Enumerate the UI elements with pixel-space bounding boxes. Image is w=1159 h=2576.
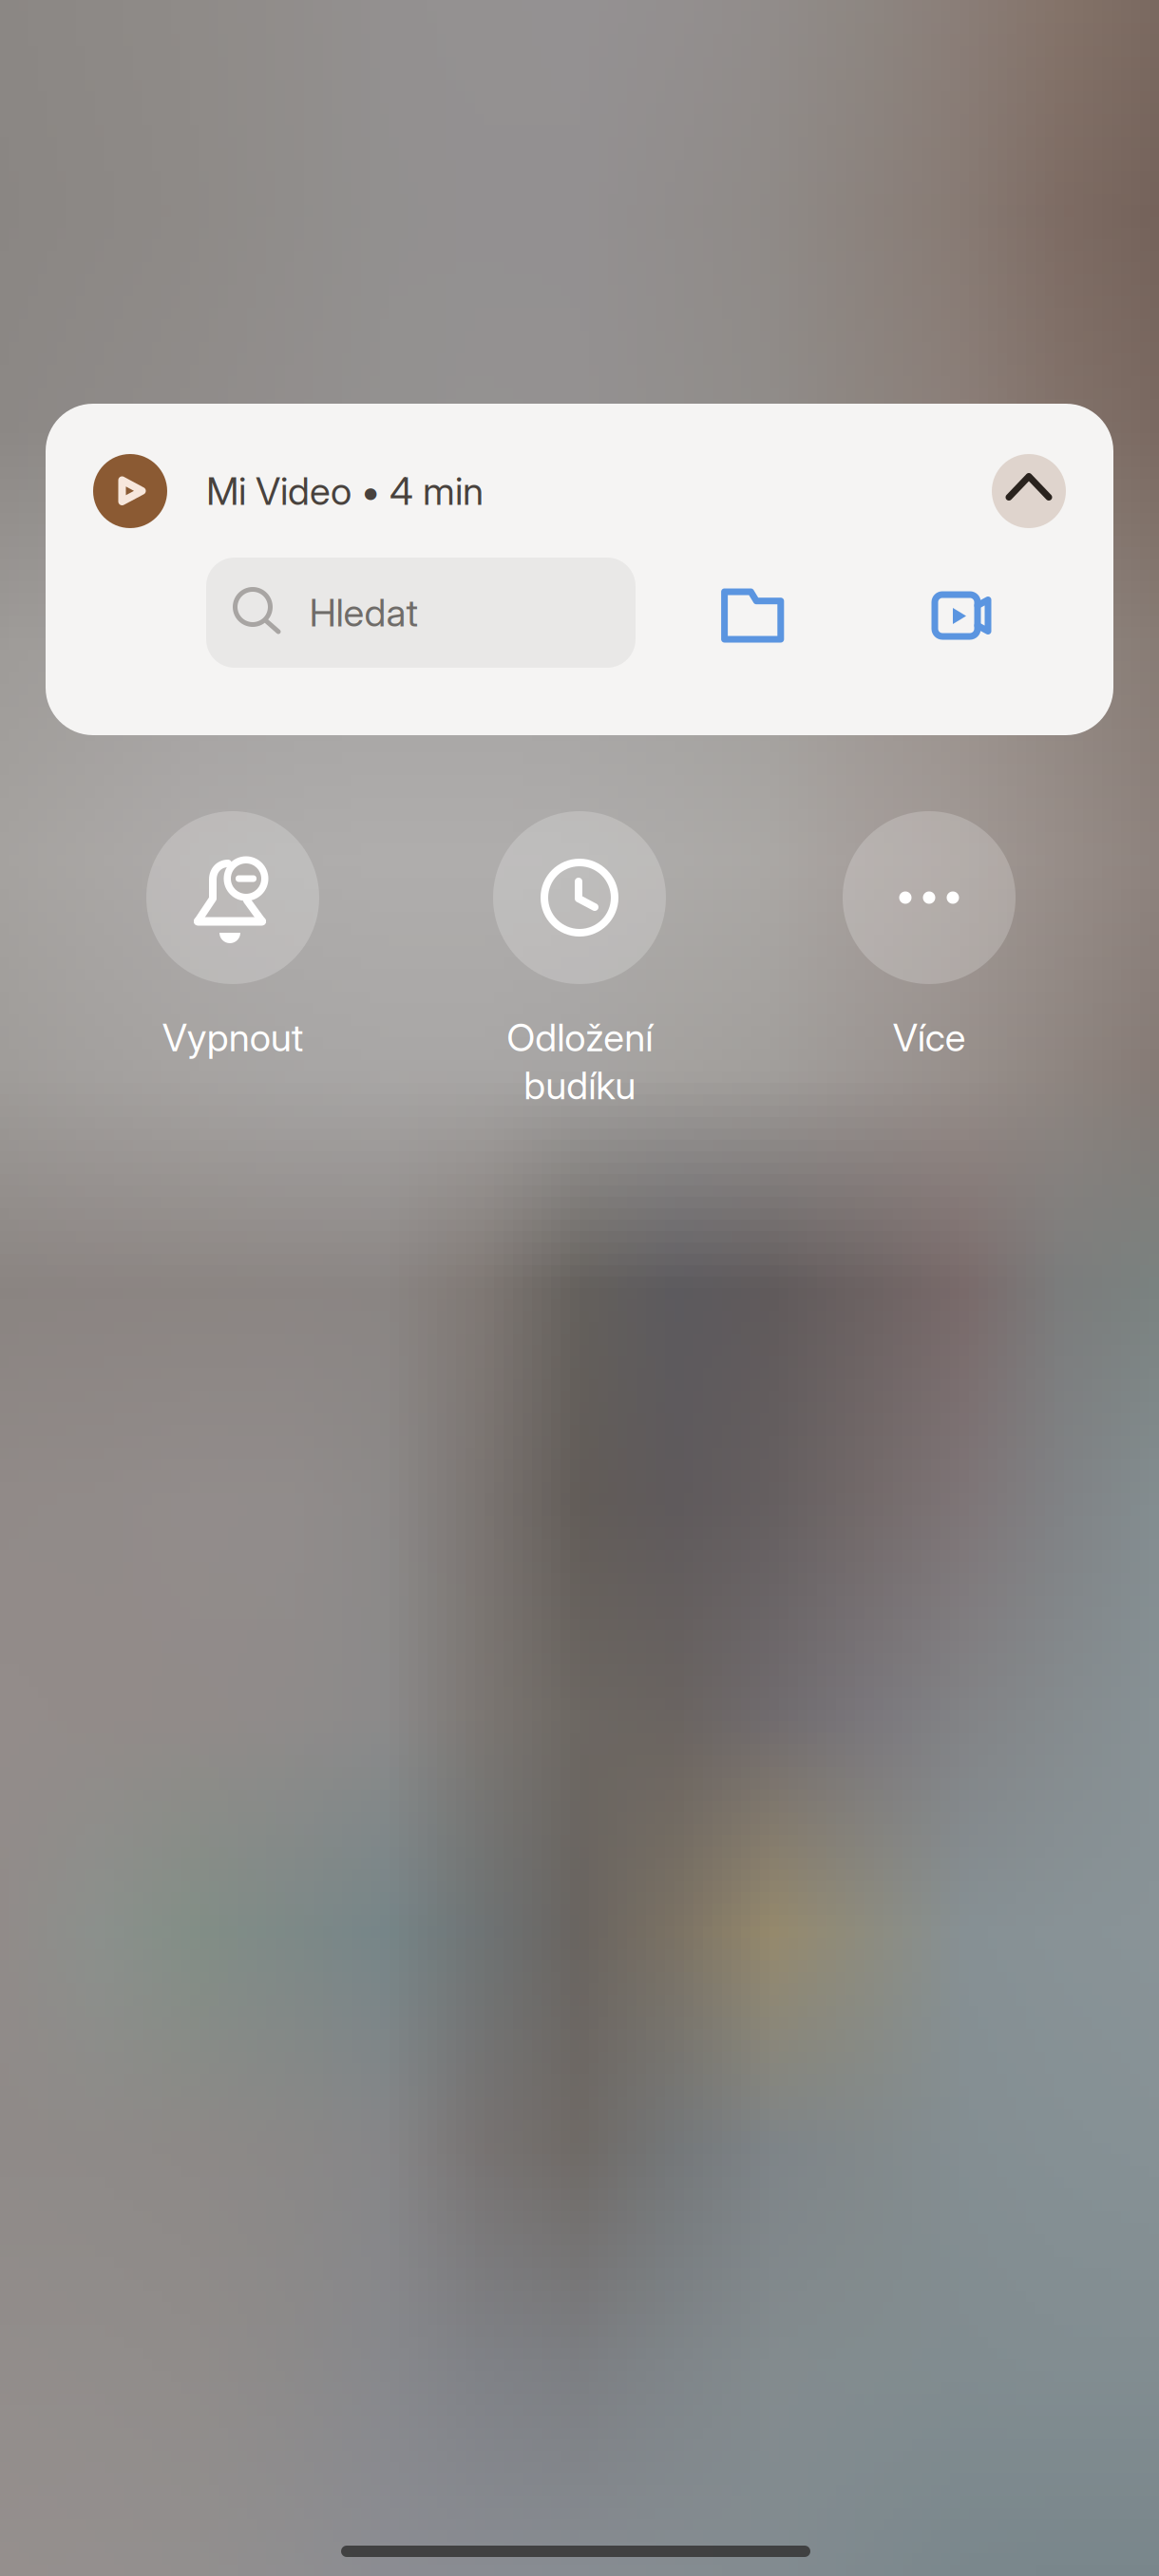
staticText: Mi Video • 4 min (206, 468, 484, 514)
staticText: Více (893, 1014, 966, 1060)
button[interactable]: More (772, 811, 1086, 1125)
button[interactable]: Hledat (206, 558, 636, 668)
button[interactable]: Turn off (76, 811, 389, 1125)
button[interactable]: Collapse notification (992, 454, 1066, 528)
staticText: Odložení budíku (506, 1014, 653, 1108)
staticText: Vypnout (162, 1014, 304, 1060)
button[interactable]: Files (718, 581, 787, 650)
button[interactable]: Snooze (423, 811, 736, 1125)
button[interactable]: Record video (927, 581, 996, 650)
staticText: Hledat (309, 590, 419, 636)
